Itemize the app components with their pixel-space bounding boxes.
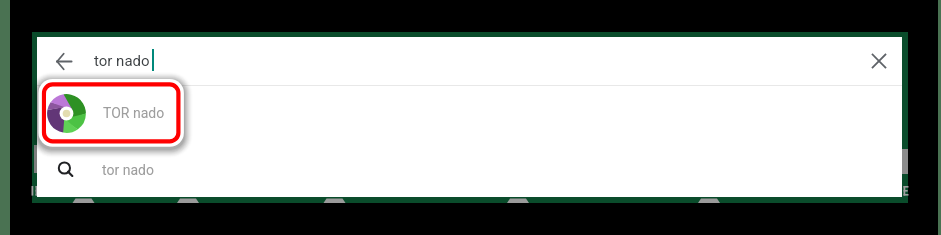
button[interactable]: TOR nado bbox=[37, 86, 902, 143]
staticText: tor nado bbox=[94, 52, 150, 70]
button[interactable]: Navigate up bbox=[44, 37, 84, 85]
staticText: tor nado bbox=[102, 162, 154, 178]
staticText: TOR nado bbox=[103, 105, 165, 121]
button[interactable]: TOR nado bbox=[46, 87, 176, 139]
staticText: TOR nado bbox=[103, 107, 165, 123]
button[interactable]: Clear query bbox=[857, 37, 901, 85]
button[interactable]: tor nado bbox=[37, 143, 902, 197]
